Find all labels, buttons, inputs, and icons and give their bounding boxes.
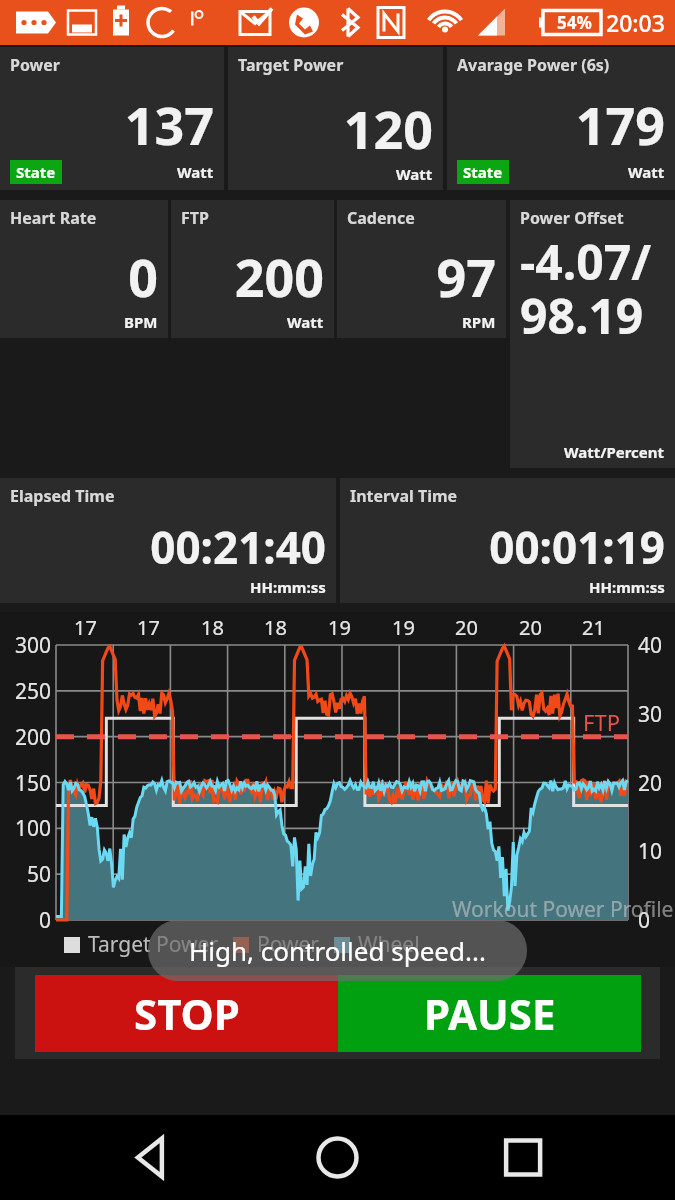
staticText: Avarage Power (6s) — [457, 54, 610, 76]
staticText: 30 — [638, 700, 663, 729]
staticText: 18 — [201, 614, 224, 641]
staticText: 00:21:40 — [150, 517, 326, 577]
staticText: HH:mm:ss — [250, 577, 326, 597]
staticText: Target Power — [88, 930, 219, 959]
staticText: HH:mm:ss — [589, 577, 665, 597]
staticText: Interval Time — [350, 485, 458, 507]
staticText: 00:01:19 — [489, 517, 665, 577]
staticText: Power — [10, 54, 61, 76]
staticText: Workout Power Profile — [452, 895, 674, 924]
staticText: 40 — [638, 631, 663, 660]
button[interactable]: FTP — [171, 200, 334, 338]
staticText: Heart Rate — [10, 207, 97, 229]
staticText: PAUSE — [424, 985, 556, 1042]
staticText: 17 — [137, 614, 160, 641]
staticText: 17 — [74, 614, 97, 641]
staticText: -4.07/98.19 — [520, 229, 665, 348]
staticText: 21 — [582, 614, 605, 641]
staticText: 20 — [638, 769, 663, 798]
staticText: Watt — [396, 164, 433, 184]
staticText: 10 — [638, 837, 663, 866]
staticText: Cadence — [347, 207, 415, 229]
staticText: 100 — [15, 814, 52, 843]
staticText: State — [463, 162, 503, 182]
staticText: 50 — [27, 860, 52, 889]
button[interactable]: STOP — [35, 975, 338, 1052]
button[interactable]: Avarage Power (6s) — [447, 47, 675, 190]
staticText: 54% — [557, 11, 592, 34]
staticText: 20 — [519, 614, 542, 641]
button[interactable]: PAUSE — [338, 975, 641, 1052]
staticText: 18 — [264, 614, 287, 641]
staticText: 200 — [234, 241, 324, 312]
staticText: RPM — [462, 312, 496, 332]
other: Navigation bar — [0, 1115, 675, 1200]
staticText: 120 — [343, 93, 433, 164]
button[interactable]: Cadence — [337, 200, 506, 338]
staticText: 20:03 — [606, 7, 665, 38]
staticText: 150 — [15, 769, 52, 798]
staticText: 179 — [575, 89, 665, 160]
staticText: State — [16, 162, 56, 182]
staticText: Wheel — [358, 930, 420, 959]
button[interactable]: Power Offset — [510, 200, 675, 468]
button[interactable]: 300 — [0, 612, 675, 967]
staticText: Power Offset — [520, 207, 624, 229]
button[interactable]: Recent apps — [450, 1115, 675, 1200]
staticText: Watt — [628, 162, 665, 182]
staticText: Elapsed Time — [10, 485, 115, 507]
staticText: 0 — [638, 906, 651, 935]
button[interactable]: Home — [225, 1115, 450, 1200]
staticText: 300 — [15, 631, 52, 660]
button[interactable]: Heart Rate — [0, 200, 168, 338]
staticText: Target Power — [238, 54, 344, 76]
staticText: 200 — [15, 723, 52, 752]
staticText: High, controlled speed... — [189, 933, 486, 968]
staticText: Watt — [177, 162, 214, 182]
staticText: Power — [257, 930, 320, 959]
staticText: 137 — [124, 89, 214, 160]
button[interactable]: Back — [0, 1115, 225, 1200]
staticText: FTP — [583, 707, 620, 737]
staticText: Watt/Percent — [564, 442, 665, 462]
button[interactable]: Elapsed Time — [0, 478, 336, 603]
staticText: 0 — [128, 241, 158, 312]
staticText: 19 — [392, 614, 415, 641]
staticText: 0 — [39, 906, 52, 935]
staticText: 250 — [15, 677, 52, 706]
button[interactable]: Interval Time — [340, 478, 675, 603]
staticText: STOP — [134, 985, 240, 1042]
staticText: BPM — [124, 312, 158, 332]
staticText: Watt — [287, 312, 324, 332]
staticText: FTP — [181, 207, 209, 229]
staticText: 20 — [455, 614, 478, 641]
button[interactable]: Target Power — [228, 47, 443, 190]
button[interactable]: Power — [0, 47, 224, 190]
staticText: 97 — [436, 241, 496, 312]
staticText: 19 — [328, 614, 351, 641]
